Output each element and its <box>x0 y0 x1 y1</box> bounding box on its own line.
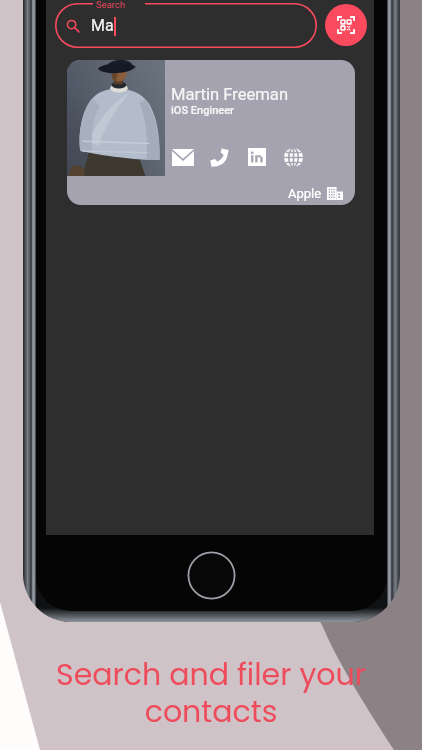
button[interactable]: Apple <box>288 186 343 201</box>
button[interactable]: Home <box>187 551 236 600</box>
staticText: Ma <box>91 16 114 35</box>
staticText: Martin Freeman <box>171 85 289 104</box>
staticText: Apple <box>288 186 322 201</box>
staticText: Search <box>96 0 126 10</box>
button[interactable]: Website <box>275 143 311 171</box>
button[interactable]: Martin Freeman <box>67 60 355 205</box>
button[interactable]: Call <box>201 143 237 171</box>
button[interactable]: Email <box>165 143 201 171</box>
button[interactable]: Scan QR code <box>325 4 367 46</box>
button[interactable]: LinkedIn <box>239 143 275 171</box>
button[interactable]: Search <box>55 3 317 48</box>
staticText: Search and filer your contacts <box>51 654 371 733</box>
staticText: iOS Engineer <box>171 104 234 117</box>
